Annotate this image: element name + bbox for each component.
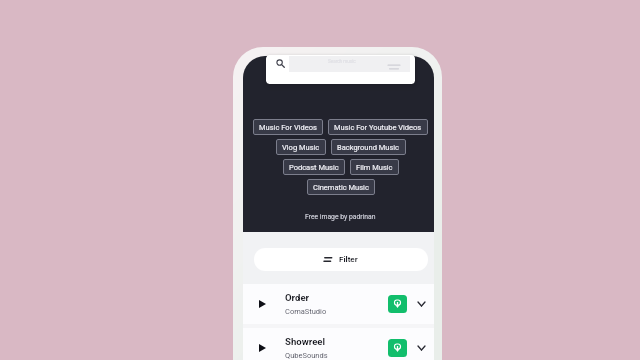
- button[interactable]: Music For Youtube Videos: [328, 119, 428, 135]
- button[interactable]: Cinematic Music: [307, 179, 375, 195]
- staticText: Podcast Music: [289, 163, 339, 172]
- staticText: Cinematic Music: [313, 183, 369, 192]
- other: Play: [259, 344, 266, 352]
- other: Search: [276, 59, 285, 68]
- staticText: Showreel: [285, 336, 326, 347]
- staticText: Background Music: [337, 143, 400, 152]
- other: Expand: [418, 346, 425, 350]
- staticText: Vlog Music: [282, 143, 320, 152]
- button[interactable]: Search: [266, 55, 415, 84]
- staticText: Film Music: [356, 163, 393, 172]
- staticText: QubeSounds: [285, 351, 328, 360]
- button[interactable]: Background Music: [331, 139, 406, 155]
- staticText: ComaStudio: [285, 307, 327, 316]
- staticText: Filter: [339, 255, 358, 264]
- staticText: Search music: [328, 59, 356, 64]
- button[interactable]: Download: [388, 339, 407, 357]
- button[interactable]: Filter: [254, 248, 428, 271]
- other: Sort: [388, 64, 400, 70]
- staticText: Music For Youtube Videos: [334, 123, 422, 132]
- button[interactable]: Play: [243, 284, 434, 324]
- button[interactable]: Music For Videos: [253, 119, 323, 135]
- button[interactable]: Podcast Music: [283, 159, 345, 175]
- staticText: Order: [285, 292, 310, 303]
- other: Play: [259, 300, 266, 308]
- button[interactable]: Vlog Music: [276, 139, 326, 155]
- staticText: Free image by padrinan: [305, 213, 376, 221]
- staticText: Music For Videos: [259, 123, 317, 132]
- other: Expand: [418, 302, 425, 306]
- button[interactable]: Play: [243, 328, 434, 360]
- button[interactable]: Film Music: [350, 159, 399, 175]
- button[interactable]: Download: [388, 295, 407, 313]
